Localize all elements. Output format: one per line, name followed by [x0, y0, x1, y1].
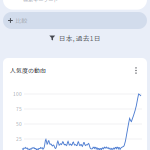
button[interactable]: More options	[130, 63, 142, 77]
staticText: 50	[16, 120, 22, 127]
button[interactable]: 比較	[3, 12, 147, 29]
staticText: 25	[16, 135, 22, 142]
staticText: 人気度の動向	[10, 66, 46, 75]
staticText: 75	[16, 105, 22, 112]
staticText: 比較	[15, 16, 27, 25]
staticText: 100	[13, 90, 22, 97]
staticText: 検索キーワード	[23, 0, 58, 3]
staticText: 日本, 過去1日	[59, 33, 101, 43]
